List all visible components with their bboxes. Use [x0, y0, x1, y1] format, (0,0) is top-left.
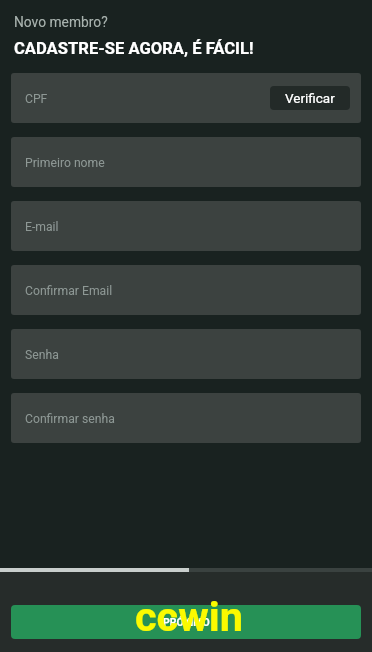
staticText: E-mail — [25, 220, 59, 234]
button[interactable]: Verificar — [270, 86, 350, 110]
staticText: ccwin — [135, 592, 243, 641]
staticText: Novo membro? — [14, 14, 108, 30]
staticText: Verificar — [285, 90, 335, 106]
staticText: CPF — [25, 92, 48, 106]
button[interactable]: PRÓXIMO — [11, 605, 361, 639]
staticText: Confirmar senha — [25, 412, 115, 426]
staticText: Senha — [25, 348, 59, 362]
button[interactable]: Confirmar Email — [11, 265, 361, 315]
button[interactable]: Senha — [11, 329, 361, 379]
staticText: Primeiro nome — [25, 156, 105, 170]
staticText: CADASTRE-SE AGORA, É FÁCIL! — [14, 39, 254, 58]
staticText: PRÓXIMO — [163, 616, 210, 628]
button[interactable]: Primeiro nome — [11, 137, 361, 187]
button[interactable]: E-mail — [11, 201, 361, 251]
staticText: Confirmar Email — [25, 284, 113, 298]
button[interactable]: CPF — [11, 73, 361, 123]
button[interactable]: Confirmar senha — [11, 393, 361, 443]
